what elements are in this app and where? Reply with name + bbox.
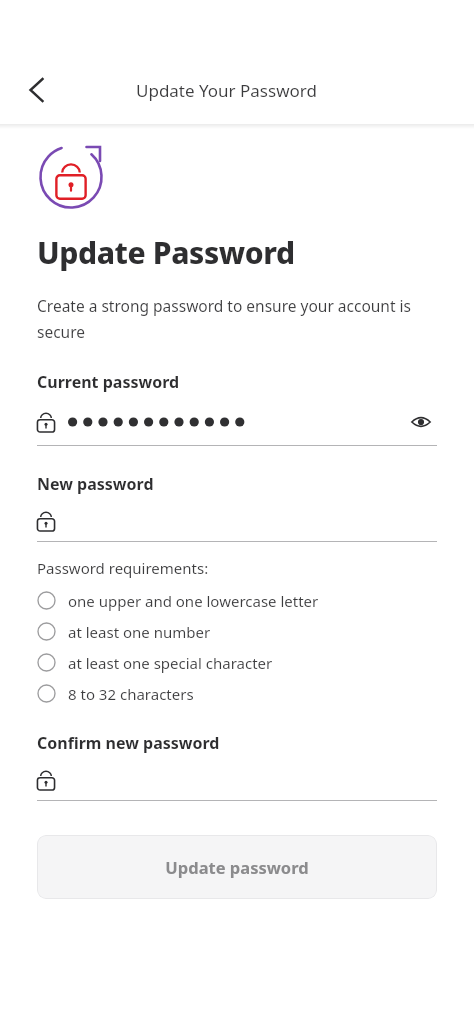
staticText: Current password	[37, 371, 180, 393]
button[interactable]	[37, 507, 437, 535]
staticText: Confirm new password	[37, 732, 220, 754]
staticText: Update Your Password	[136, 79, 317, 102]
staticText: at least one number	[68, 622, 211, 642]
button[interactable]: Show password	[37, 405, 437, 439]
staticText: Update password	[165, 856, 309, 878]
staticText: New password	[37, 473, 154, 495]
button[interactable]	[37, 766, 437, 794]
button[interactable]: 8 to 32 characters	[37, 678, 437, 709]
staticText: Update Password	[37, 232, 295, 273]
staticText: at least one special character	[68, 653, 273, 673]
button[interactable]: at least one special character	[37, 647, 437, 678]
button[interactable]: one upper and one lowercase letter	[37, 585, 437, 616]
staticText: Password requirements:	[37, 558, 209, 578]
button[interactable]: Show password	[405, 406, 437, 438]
staticText: one upper and one lowercase letter	[68, 591, 319, 611]
button[interactable]: Back	[12, 66, 60, 114]
button[interactable]: at least one number	[37, 616, 437, 647]
staticText: Create a strong password to ensure your …	[37, 295, 437, 343]
button[interactable]: Update password	[37, 835, 437, 899]
staticText: 8 to 32 characters	[68, 684, 194, 704]
